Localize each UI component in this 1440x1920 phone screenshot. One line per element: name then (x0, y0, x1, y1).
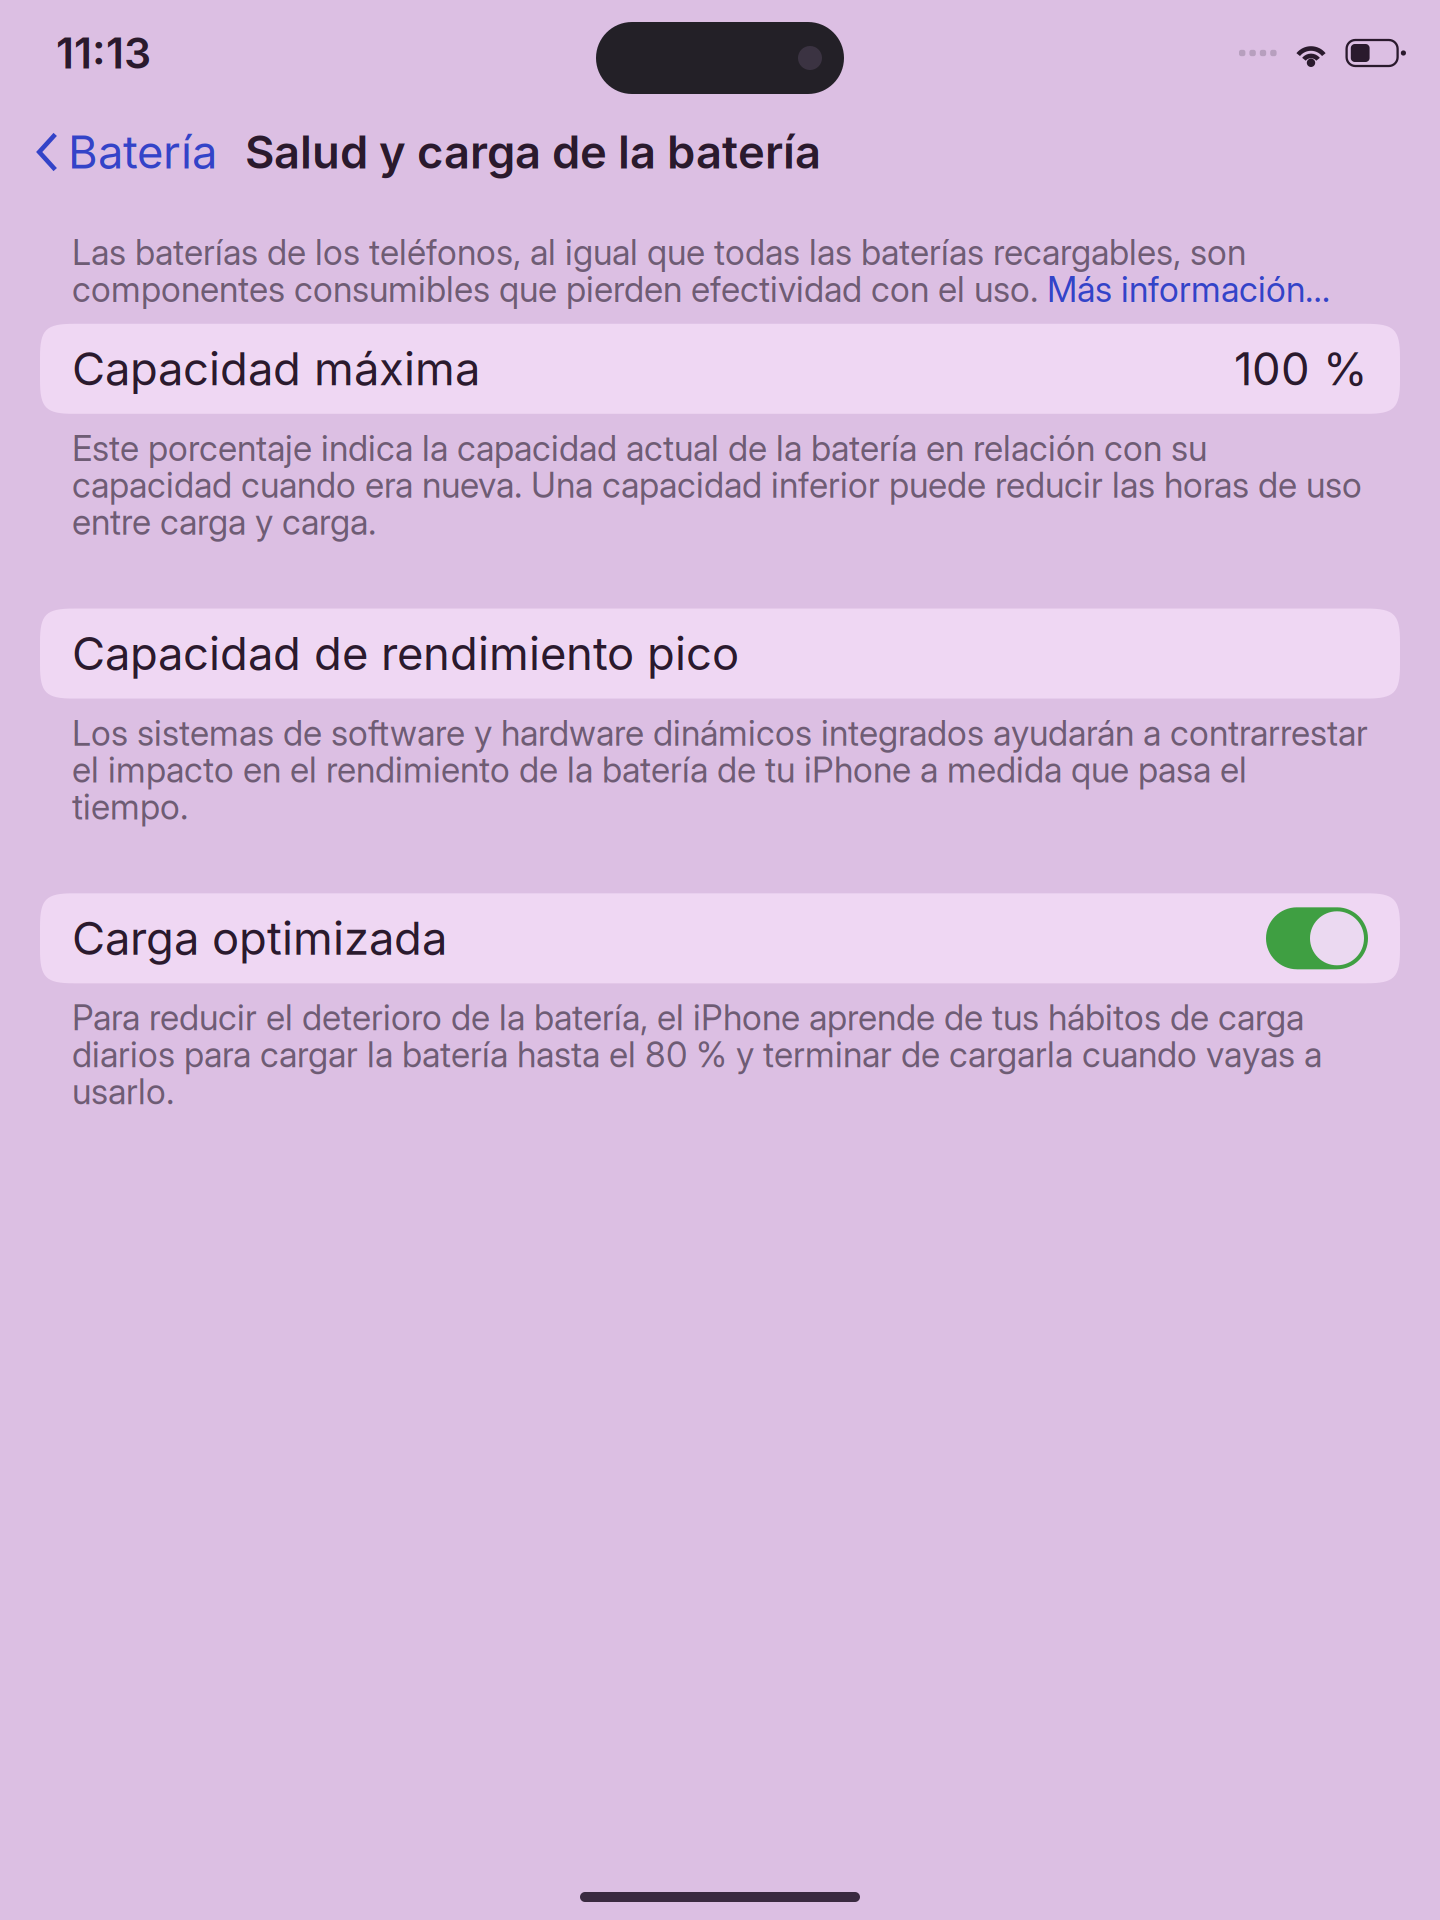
button[interactable]: Capacidad de rendimiento pico (40, 609, 1400, 699)
staticText: Batería (68, 128, 217, 176)
staticText: Para reducir el deterioro de la batería,… (72, 999, 1322, 1110)
button[interactable]: Capacidad máxima (40, 324, 1400, 414)
button[interactable]: Carga optimizada (40, 893, 1400, 983)
staticText: Carga optimizada (72, 914, 447, 962)
button[interactable]: Batería (0, 108, 227, 196)
staticText: Capacidad máxima (72, 345, 480, 393)
staticText: Este porcentaje indica la capacidad actu… (72, 430, 1362, 540)
staticText: 11:13 (56, 30, 151, 76)
staticText: 100 % (1234, 345, 1368, 393)
staticText: Capacidad de rendimiento pico (72, 629, 739, 678)
staticText: Salud y carga de la batería (245, 128, 821, 176)
staticText: Las baterías de los teléfonos, al igual … (72, 234, 1330, 308)
staticText: Los sistemas de software y hardware diná… (72, 715, 1368, 825)
